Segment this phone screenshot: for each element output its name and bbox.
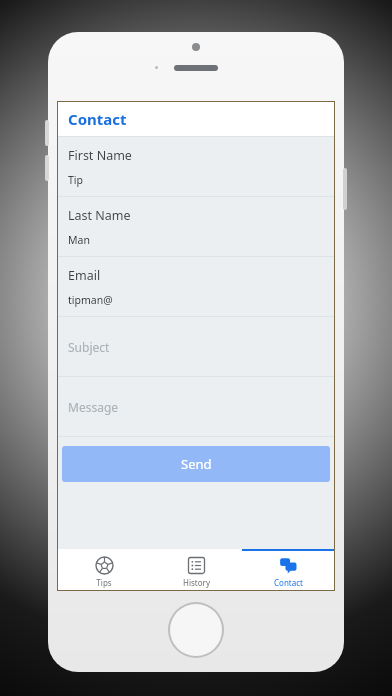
other: Contact <box>279 556 298 575</box>
button[interactable]: Subject <box>58 317 334 376</box>
other: History <box>187 556 206 575</box>
staticText: Message <box>68 399 119 415</box>
staticText: History <box>183 577 210 588</box>
staticText: First Name <box>68 147 132 164</box>
button[interactable]: History <box>150 549 242 590</box>
staticText: Man <box>68 233 90 247</box>
staticText: Contact <box>68 109 127 129</box>
button[interactable]: Contact <box>242 549 334 590</box>
button[interactable]: Tips <box>58 549 150 590</box>
staticText: Tips <box>96 577 112 588</box>
button[interactable]: Send <box>62 446 330 482</box>
staticText: Subject <box>68 339 110 355</box>
staticText: Send <box>181 455 212 473</box>
other: Tips <box>95 556 114 575</box>
staticText: Last Name <box>68 207 131 224</box>
button[interactable]: Email <box>58 257 334 316</box>
staticText: Email <box>68 267 101 284</box>
staticText: Contact <box>274 577 303 588</box>
staticText: tipman@ <box>68 293 113 307</box>
button[interactable]: Last Name <box>58 197 334 256</box>
button[interactable]: Message <box>58 377 334 436</box>
staticText: Tip <box>68 173 84 187</box>
button[interactable]: First Name <box>58 137 334 196</box>
